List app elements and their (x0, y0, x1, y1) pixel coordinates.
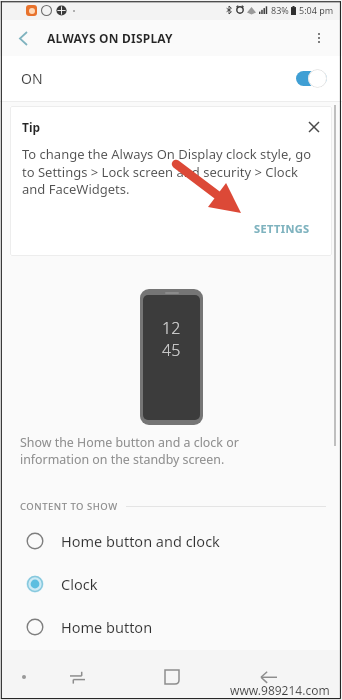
button[interactable]: Home button (0, 605, 342, 648)
staticText: ON (21, 69, 43, 88)
staticText: 45 (162, 339, 181, 361)
staticText: Home button (61, 617, 153, 637)
staticText: 12 (162, 317, 181, 339)
staticText: CONTENT TO SHOW (20, 500, 118, 513)
staticText: SETTINGS (254, 221, 310, 236)
staticText: Clock (61, 574, 98, 594)
button[interactable]: SETTINGS (240, 218, 324, 239)
button[interactable]: Home (156, 665, 188, 689)
button[interactable]: Recents (61, 665, 93, 689)
button[interactable]: Back (252, 665, 284, 689)
staticText: Show the Home button and a clock or info… (20, 434, 262, 468)
button[interactable]: Home button and clock (0, 519, 342, 562)
staticText: Tip (22, 119, 41, 135)
button[interactable]: Clock (0, 562, 342, 605)
staticText: 83% (271, 4, 289, 16)
button[interactable]: Close (304, 117, 324, 137)
staticText: Home button and clock (61, 531, 220, 551)
staticText: 5:04 pm (299, 4, 334, 16)
staticText: www.989214.com (230, 682, 330, 698)
staticText: To change the Always On Display clock st… (22, 145, 324, 198)
staticText: ALWAYS ON DISPLAY (47, 30, 173, 46)
button[interactable]: More options (306, 25, 332, 51)
button[interactable]: ON (0, 56, 342, 101)
button[interactable]: Back (10, 25, 36, 51)
